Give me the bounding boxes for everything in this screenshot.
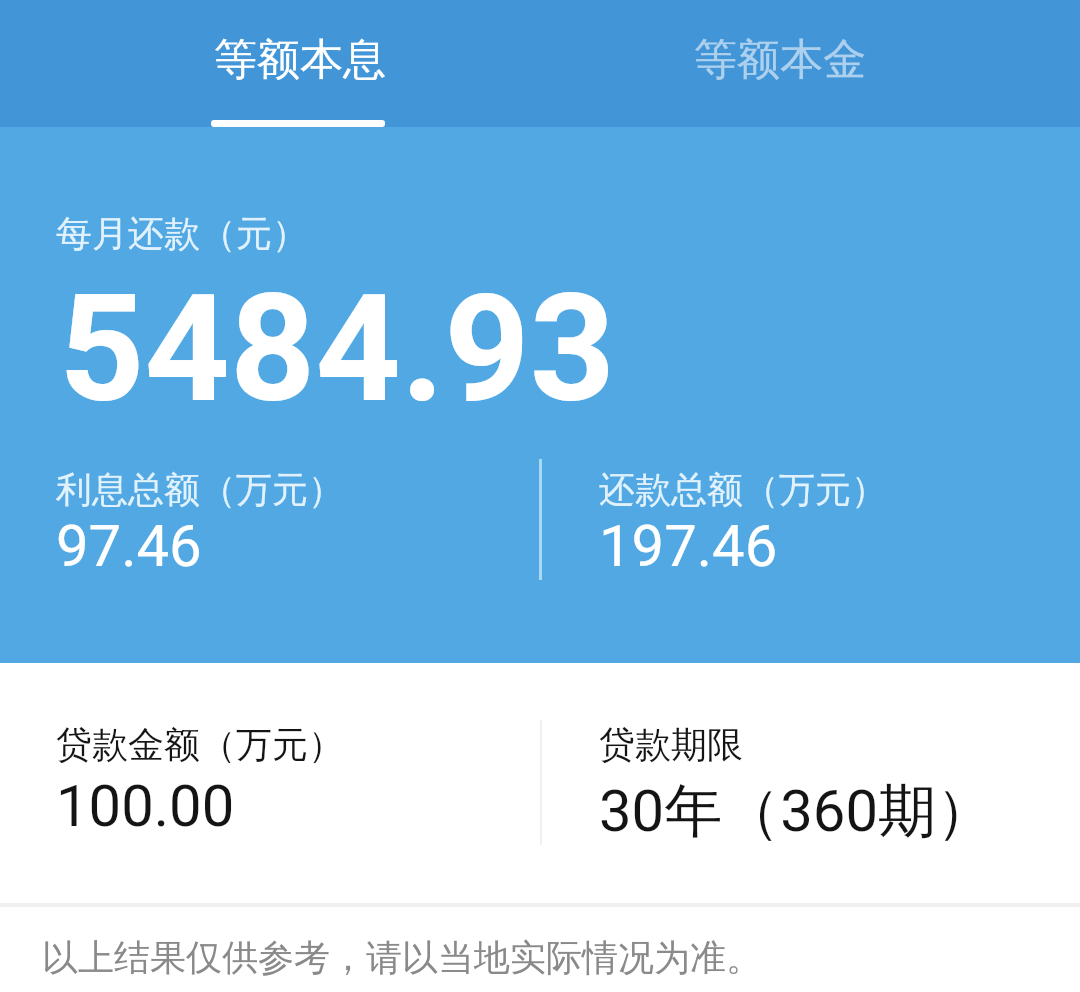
staticText: 还款总额（万元）: [599, 467, 887, 512]
staticText: 贷款期限: [599, 722, 743, 767]
staticText: 以上结果仅供参考，请以当地实际情况为准。: [42, 935, 762, 980]
staticText: 等额本金: [694, 33, 866, 87]
staticText: 贷款金额（万元）: [56, 722, 344, 767]
button[interactable]: 等额本金: [540, 0, 1080, 127]
staticText: 5484.93: [59, 262, 616, 437]
staticText: 利息总额（万元）: [56, 467, 344, 512]
staticText: 等额本息: [214, 33, 386, 87]
staticText: 97.46: [56, 512, 202, 580]
staticText: 每月还款（元）: [56, 211, 308, 256]
staticText: 30年（360期）: [599, 775, 994, 848]
button[interactable]: 等额本息: [0, 0, 540, 127]
staticText: 100.00: [56, 772, 235, 840]
staticText: 197.46: [599, 512, 778, 580]
